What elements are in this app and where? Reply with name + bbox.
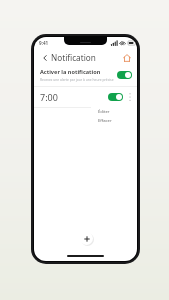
staticText: Notification <box>51 52 96 63</box>
button[interactable]: Home <box>120 51 133 64</box>
button[interactable]: More options <box>126 90 133 104</box>
button[interactable]: Add notification <box>80 232 93 245</box>
staticText: Effacer <box>98 118 112 124</box>
button[interactable]: Notification toggle, on <box>108 93 123 101</box>
button[interactable]: Notification toggle, on <box>117 71 132 79</box>
staticText: Éditer <box>98 109 110 115</box>
button[interactable]: 7:00 <box>34 87 137 107</box>
button[interactable]: Effacer <box>91 116 137 125</box>
button[interactable]: Back <box>38 51 51 64</box>
staticText: Recevez une alerte par jour à une heure … <box>40 77 114 81</box>
staticText: 9:41 <box>39 40 49 46</box>
staticText: Activer la notification <box>40 68 101 76</box>
button[interactable]: Activer la notification <box>34 66 137 86</box>
button[interactable]: Éditer <box>91 107 137 116</box>
staticText: 7:00 <box>40 91 58 103</box>
